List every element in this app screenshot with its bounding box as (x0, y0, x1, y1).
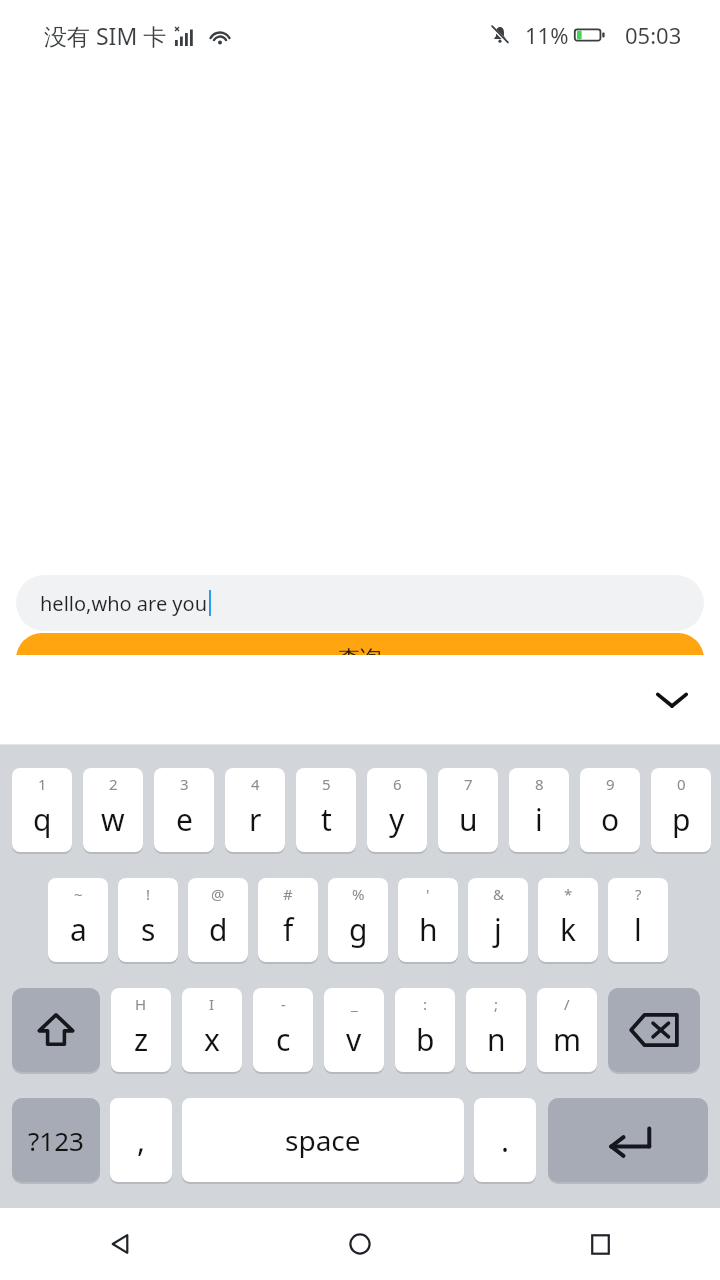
button[interactable]: Home (240, 1208, 480, 1280)
button[interactable]: 4 (225, 768, 285, 852)
button[interactable]: # (258, 878, 318, 962)
button[interactable]: , (110, 1098, 172, 1182)
button[interactable]: 8 (509, 768, 569, 852)
staticText: 没有 SIM 卡 (44, 20, 167, 51)
staticText: f (283, 909, 294, 950)
button[interactable]: ?123 (12, 1098, 100, 1182)
button[interactable]: 1 (12, 768, 72, 852)
staticText: n (487, 1019, 506, 1060)
staticText: , (137, 1120, 146, 1161)
staticText: a (70, 909, 87, 950)
staticText: % (352, 884, 365, 904)
button[interactable]: Hide keyboard (644, 672, 700, 728)
staticText: r (249, 799, 262, 840)
staticText: e (176, 799, 193, 840)
button[interactable]: I (182, 988, 242, 1072)
staticText: d (209, 909, 228, 950)
staticText: ' (426, 884, 430, 904)
staticText: * (564, 884, 573, 904)
staticText: . (501, 1120, 510, 1161)
button[interactable]: ! (118, 878, 178, 962)
staticText: hello,who are you (40, 590, 208, 617)
staticText: j (494, 909, 502, 950)
staticText: ; (494, 994, 499, 1014)
staticText: i (535, 799, 543, 840)
staticText: 6 (393, 774, 402, 794)
staticText: ?123 (28, 1123, 84, 1158)
button[interactable]: @ (188, 878, 248, 962)
button[interactable]: 9 (580, 768, 640, 852)
staticText: : (423, 994, 428, 1014)
staticText: g (349, 909, 368, 950)
button[interactable]: 查询 (16, 633, 704, 717)
staticText: @ (211, 884, 225, 904)
staticText: k (560, 909, 577, 950)
button[interactable]: _ (324, 988, 384, 1072)
staticText: I (209, 994, 215, 1014)
button[interactable]: Back (0, 1208, 240, 1280)
staticText: x (204, 1019, 220, 1060)
staticText: _ (351, 994, 358, 1014)
staticText: y (389, 799, 405, 840)
staticText: 7 (464, 774, 473, 794)
staticText: b (416, 1019, 435, 1060)
button[interactable]: : (395, 988, 455, 1072)
staticText: h (419, 909, 438, 950)
staticText: v (346, 1019, 362, 1060)
staticText: c (276, 1019, 291, 1060)
staticText: & (493, 884, 504, 904)
button[interactable]: & (468, 878, 528, 962)
button[interactable]: 3 (154, 768, 214, 852)
button[interactable]: 6 (367, 768, 427, 852)
staticText: z (134, 1019, 149, 1060)
staticText: ! (146, 884, 151, 904)
staticText: w (101, 799, 125, 840)
staticText: 4 (251, 774, 260, 794)
staticText: 05:03 (625, 20, 682, 50)
staticText: space (285, 1121, 361, 1159)
staticText: ~ (74, 884, 83, 904)
button[interactable]: space (182, 1098, 464, 1182)
button[interactable]: 7 (438, 768, 498, 852)
staticText: m (553, 1019, 582, 1060)
staticText: s (141, 909, 156, 950)
button[interactable]: hello,who are you (16, 575, 704, 631)
button[interactable]: . (474, 1098, 536, 1182)
staticText: 9 (606, 774, 615, 794)
staticText: 11% (525, 20, 569, 50)
button[interactable]: ; (466, 988, 526, 1072)
button[interactable]: 2 (83, 768, 143, 852)
button[interactable]: Backspace (608, 988, 700, 1072)
staticText: l (634, 909, 642, 950)
staticText: # (283, 884, 293, 904)
button[interactable]: Shift (12, 988, 100, 1072)
button[interactable]: 5 (296, 768, 356, 852)
button[interactable]: / (537, 988, 597, 1072)
button[interactable]: ~ (48, 878, 108, 962)
staticText: / (564, 994, 570, 1014)
staticText: q (33, 799, 52, 840)
button[interactable]: Recent apps (480, 1208, 720, 1280)
staticText: 3 (180, 774, 189, 794)
button[interactable]: - (253, 988, 313, 1072)
staticText: t (321, 799, 332, 840)
button[interactable]: 0 (651, 768, 711, 852)
staticText: H (135, 994, 147, 1014)
button[interactable]: % (328, 878, 388, 962)
staticText: p (672, 799, 691, 840)
button[interactable]: H (111, 988, 171, 1072)
staticText: u (459, 799, 478, 840)
button[interactable]: ' (398, 878, 458, 962)
button[interactable]: * (538, 878, 598, 962)
staticText: ? (635, 884, 642, 904)
button[interactable]: Enter (548, 1098, 708, 1182)
staticText: 0 (677, 774, 686, 794)
staticText: 5 (322, 774, 331, 794)
staticText: 2 (109, 774, 118, 794)
staticText: - (281, 994, 286, 1014)
staticText: o (601, 799, 620, 840)
staticText: 8 (535, 774, 544, 794)
staticText: 1 (38, 774, 47, 794)
staticText: 查询 (338, 645, 382, 673)
button[interactable]: ? (608, 878, 668, 962)
